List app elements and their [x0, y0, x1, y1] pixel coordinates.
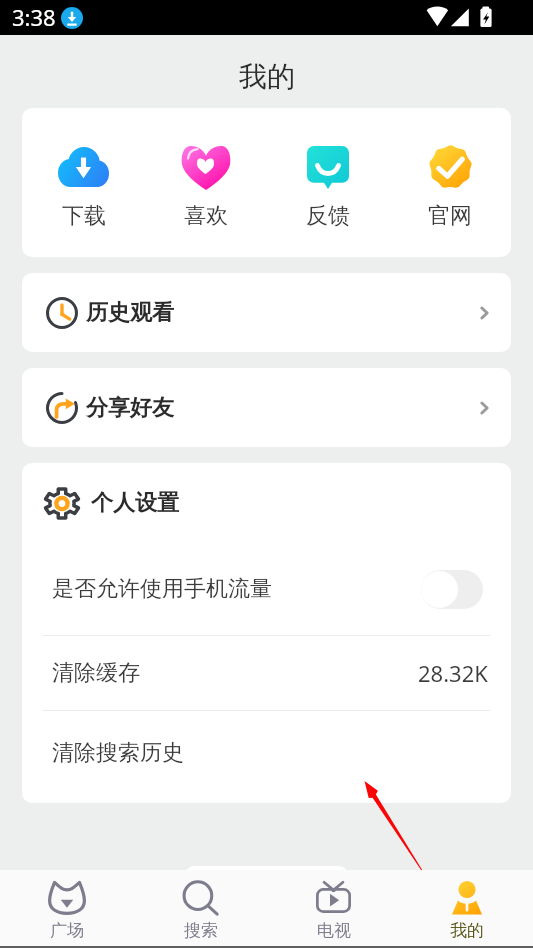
staticText: 清除缓存: [52, 659, 140, 687]
button[interactable]: 下载: [22, 108, 145, 257]
staticText: 喜欢: [184, 202, 228, 230]
button[interactable]: 历史观看: [22, 273, 511, 352]
staticText: 广场: [50, 920, 84, 941]
button[interactable]: 电视: [267, 870, 400, 948]
button[interactable]: 广场: [0, 870, 134, 948]
staticText: 我的: [450, 920, 484, 941]
staticText: 反馈: [306, 202, 350, 230]
button[interactable]: 官网: [389, 108, 511, 257]
staticText: 28.32K: [418, 658, 488, 688]
button[interactable]: 我的: [400, 870, 533, 948]
staticText: 历史观看: [86, 299, 174, 327]
staticText: 搜索: [184, 920, 218, 941]
staticText: 分享好友: [86, 394, 174, 422]
staticText: 清除搜索历史: [52, 739, 184, 767]
button[interactable]: 清除缓存: [22, 636, 511, 710]
button[interactable]: 搜索: [134, 870, 267, 948]
button[interactable]: 允许使用手机流量开关: [421, 569, 483, 609]
staticText: 官网: [428, 202, 472, 230]
button[interactable]: 是否允许使用手机流量: [22, 543, 511, 635]
button[interactable]: 分享好友: [22, 368, 511, 447]
other: 电视: [316, 881, 351, 913]
staticText: 我的: [239, 59, 295, 94]
button[interactable]: 清除搜索历史: [22, 711, 511, 795]
staticText: 3:38: [12, 2, 56, 32]
button[interactable]: 喜欢: [145, 108, 267, 257]
other: 广场: [48, 880, 86, 915]
button[interactable]: 反馈: [267, 108, 389, 257]
staticText: 是否允许使用手机流量: [52, 575, 272, 603]
staticText: 下载: [62, 202, 106, 230]
other: 我的: [452, 879, 482, 916]
staticText: 个人设置: [91, 489, 179, 517]
staticText: 电视: [317, 920, 351, 941]
other: 搜索: [182, 880, 219, 916]
